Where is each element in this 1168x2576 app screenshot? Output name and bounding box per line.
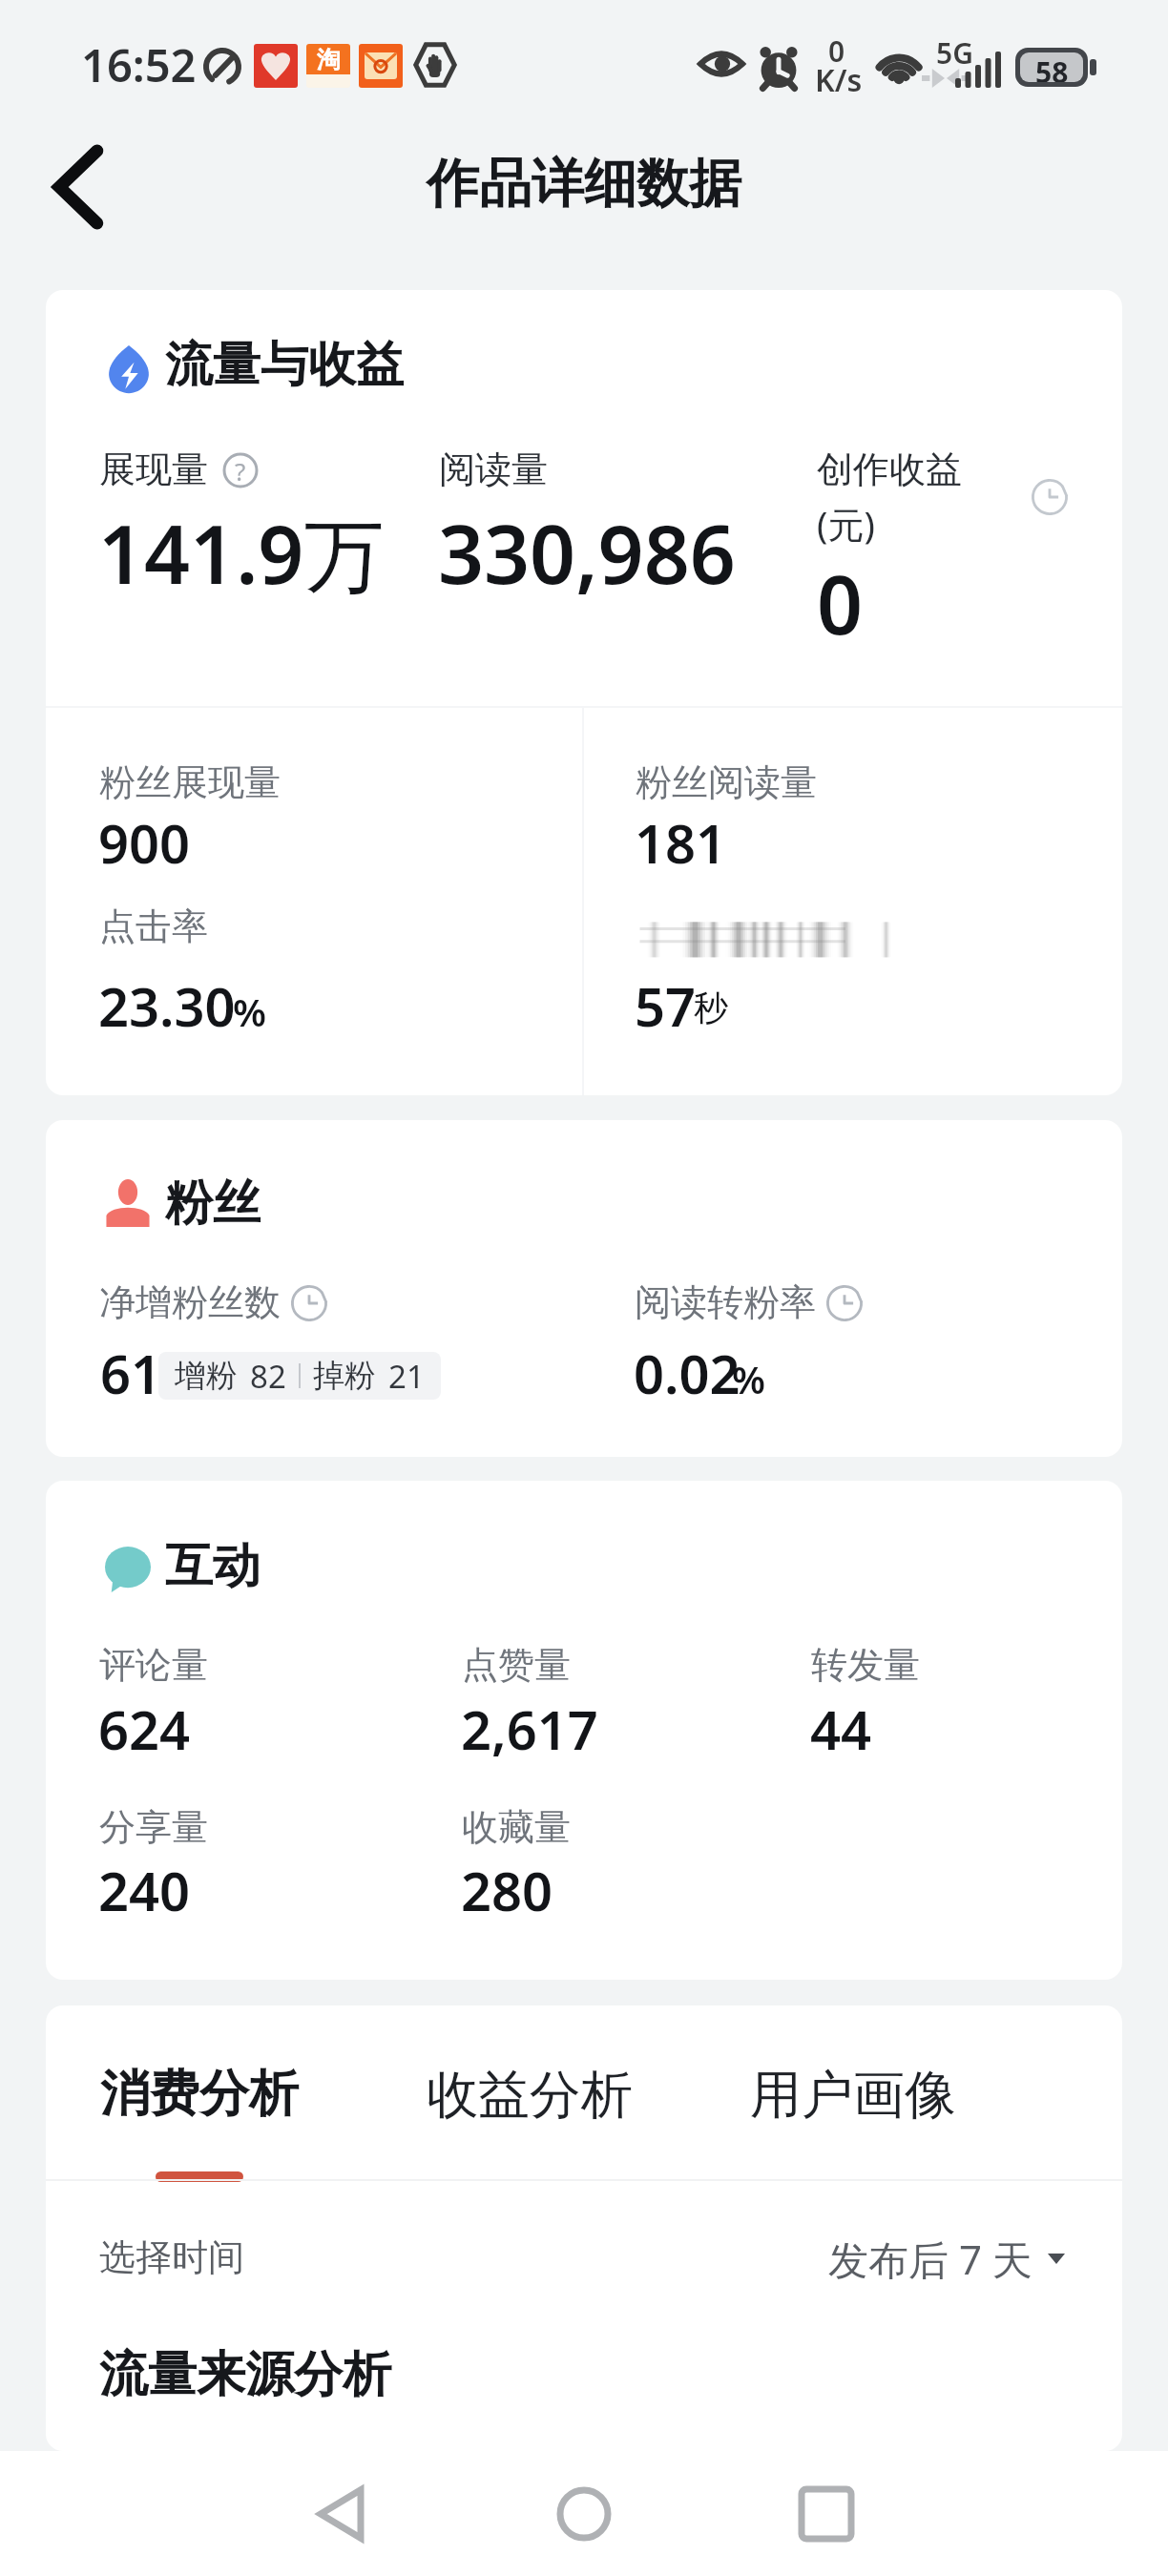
staticText: 粉丝: [165, 1174, 261, 1234]
staticText: 淘: [317, 45, 341, 74]
button[interactable]: 用户画像: [703, 2025, 990, 2182]
button[interactable]: Help: [222, 452, 259, 488]
staticText: 粉丝阅读量: [636, 759, 817, 805]
staticText: 44: [810, 1693, 872, 1765]
staticText: 发布后 7 天: [828, 2232, 1032, 2286]
button[interactable]: Recent apps: [779, 2466, 874, 2562]
staticText: 点赞量: [462, 1642, 571, 1688]
button[interactable]: Home: [536, 2466, 632, 2562]
staticText: 阅读转粉率: [635, 1279, 816, 1325]
staticText: 增粉: [175, 1356, 238, 1396]
staticText: 2,617: [461, 1693, 598, 1765]
staticText: 23.30: [98, 969, 236, 1042]
staticText: 21: [388, 1355, 425, 1398]
staticText: 流量来源分析: [99, 2344, 391, 2405]
staticText: 82: [250, 1355, 286, 1398]
staticText: 用户画像: [750, 2063, 956, 2128]
staticText: 0: [817, 549, 864, 657]
staticText: 57: [635, 969, 697, 1042]
button[interactable]: Back: [26, 135, 131, 239]
button[interactable]: 消费分析: [53, 2025, 340, 2182]
staticText: 选择时间: [99, 2234, 244, 2280]
staticText: 624: [98, 1693, 191, 1765]
button[interactable]: 收益分析: [380, 2025, 666, 2182]
staticText: %: [732, 1353, 765, 1404]
button[interactable]: 发布后 7 天: [828, 2227, 1065, 2290]
staticText: 流量与收益: [165, 335, 404, 395]
staticText: 阅读量: [439, 447, 548, 492]
staticText: 分享量: [99, 1804, 208, 1850]
staticText: 转发量: [811, 1642, 920, 1688]
staticText: 0.02: [634, 1337, 740, 1409]
staticText: (元): [817, 499, 875, 549]
staticText: 330,986: [438, 498, 736, 607]
staticText: 240: [98, 1854, 191, 1926]
staticText: 0: [828, 31, 845, 71]
staticText: 141.9万: [98, 498, 385, 608]
staticText: 掉粉: [313, 1356, 376, 1396]
staticText: 61: [100, 1337, 162, 1409]
staticText: 秒: [694, 987, 728, 1029]
staticText: 点击率: [99, 904, 208, 949]
staticText: 评论量: [99, 1642, 208, 1688]
staticText: 收藏量: [462, 1804, 571, 1850]
staticText: %: [233, 986, 266, 1037]
staticText: 5G: [936, 33, 973, 73]
staticText: 展现量: [99, 447, 208, 492]
staticText: 净增粉丝数: [99, 1279, 281, 1325]
staticText: 互动: [165, 1536, 261, 1596]
staticText: K/s: [815, 59, 863, 101]
staticText: 16:52: [81, 34, 197, 95]
staticText: 作品详细数据: [427, 151, 741, 217]
staticText: 消费分析: [100, 2063, 299, 2126]
button[interactable]: Back: [294, 2466, 389, 2562]
staticText: 创作收益: [817, 447, 962, 492]
staticText: 181: [635, 806, 727, 879]
staticText: 粉丝展现量: [99, 759, 281, 805]
staticText: 收益分析: [427, 2063, 633, 2128]
staticText: 280: [461, 1854, 553, 1926]
staticText: 900: [98, 806, 191, 879]
staticText: ?: [235, 454, 246, 488]
staticText: 58: [1035, 52, 1069, 82]
